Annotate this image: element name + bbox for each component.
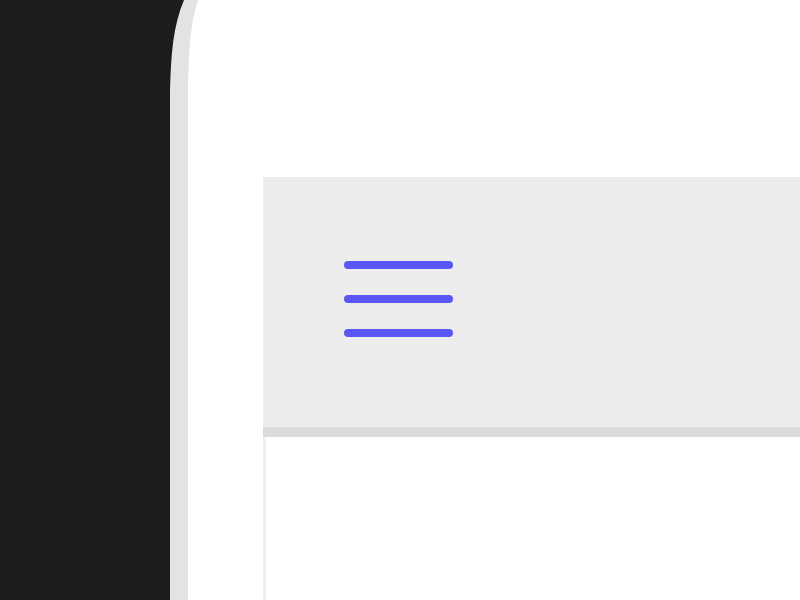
button[interactable]: Open navigation menu bbox=[344, 261, 453, 337]
